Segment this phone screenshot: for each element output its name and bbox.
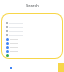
staticText: Search xyxy=(26,3,39,8)
